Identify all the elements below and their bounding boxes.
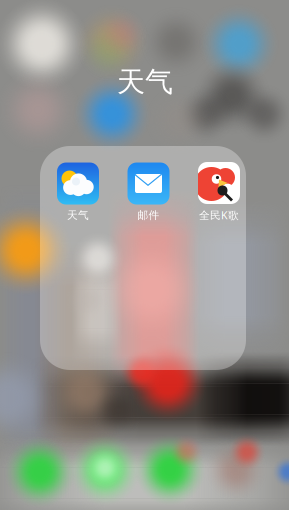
button[interactable]: 全民K歌 xyxy=(184,162,254,222)
staticText: 天气 xyxy=(67,208,89,222)
button[interactable]: 邮件 xyxy=(113,162,184,222)
staticText: 邮件 xyxy=(137,208,159,222)
button[interactable]: 天气 xyxy=(43,162,113,222)
staticText: 天气 xyxy=(117,65,173,99)
staticText: 全民K歌 xyxy=(199,208,239,222)
